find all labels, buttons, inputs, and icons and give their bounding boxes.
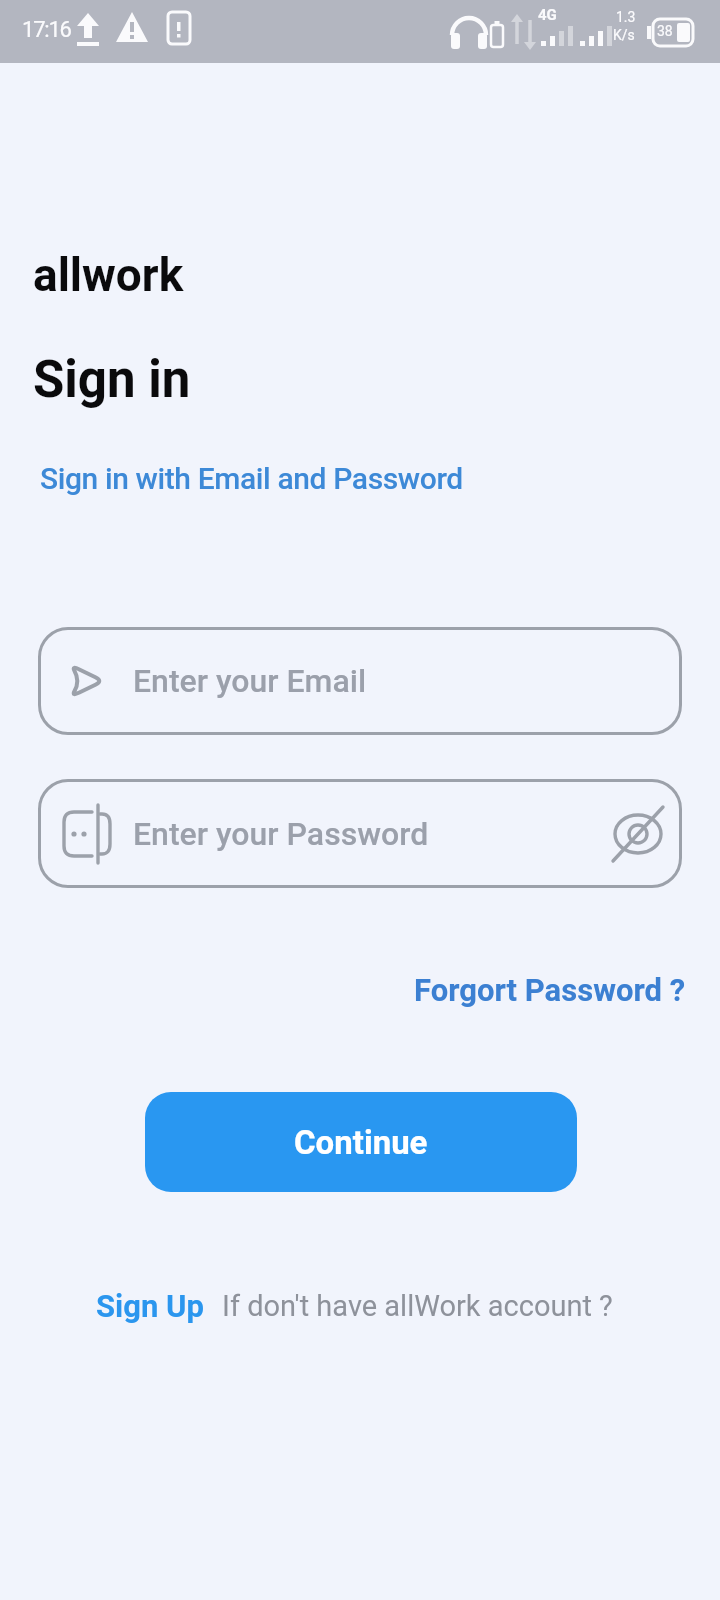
button[interactable]: Sign Up xyxy=(96,1288,204,1324)
staticText: Enter your Password xyxy=(133,815,429,853)
staticText: Sign in xyxy=(33,350,191,410)
button[interactable]: Sign in with Email and Password xyxy=(40,461,463,496)
staticText: K/s xyxy=(613,27,635,43)
staticText: Continue xyxy=(294,1123,428,1162)
button[interactable]: Enter your Password xyxy=(38,779,682,888)
staticText: 4G xyxy=(538,6,557,24)
staticText: 1.3 xyxy=(616,9,636,25)
staticText: allwork xyxy=(33,248,184,302)
button[interactable]: Forgort Password ? xyxy=(414,972,686,1008)
staticText: Enter your Email xyxy=(133,662,367,700)
button[interactable]: Continue xyxy=(145,1092,577,1192)
button[interactable] xyxy=(613,809,663,859)
staticText: If don't have allWork account ? xyxy=(222,1289,613,1323)
staticText: 17:16 xyxy=(22,17,71,43)
staticText: 38 xyxy=(657,23,673,39)
button[interactable]: Enter your Email xyxy=(38,627,682,735)
